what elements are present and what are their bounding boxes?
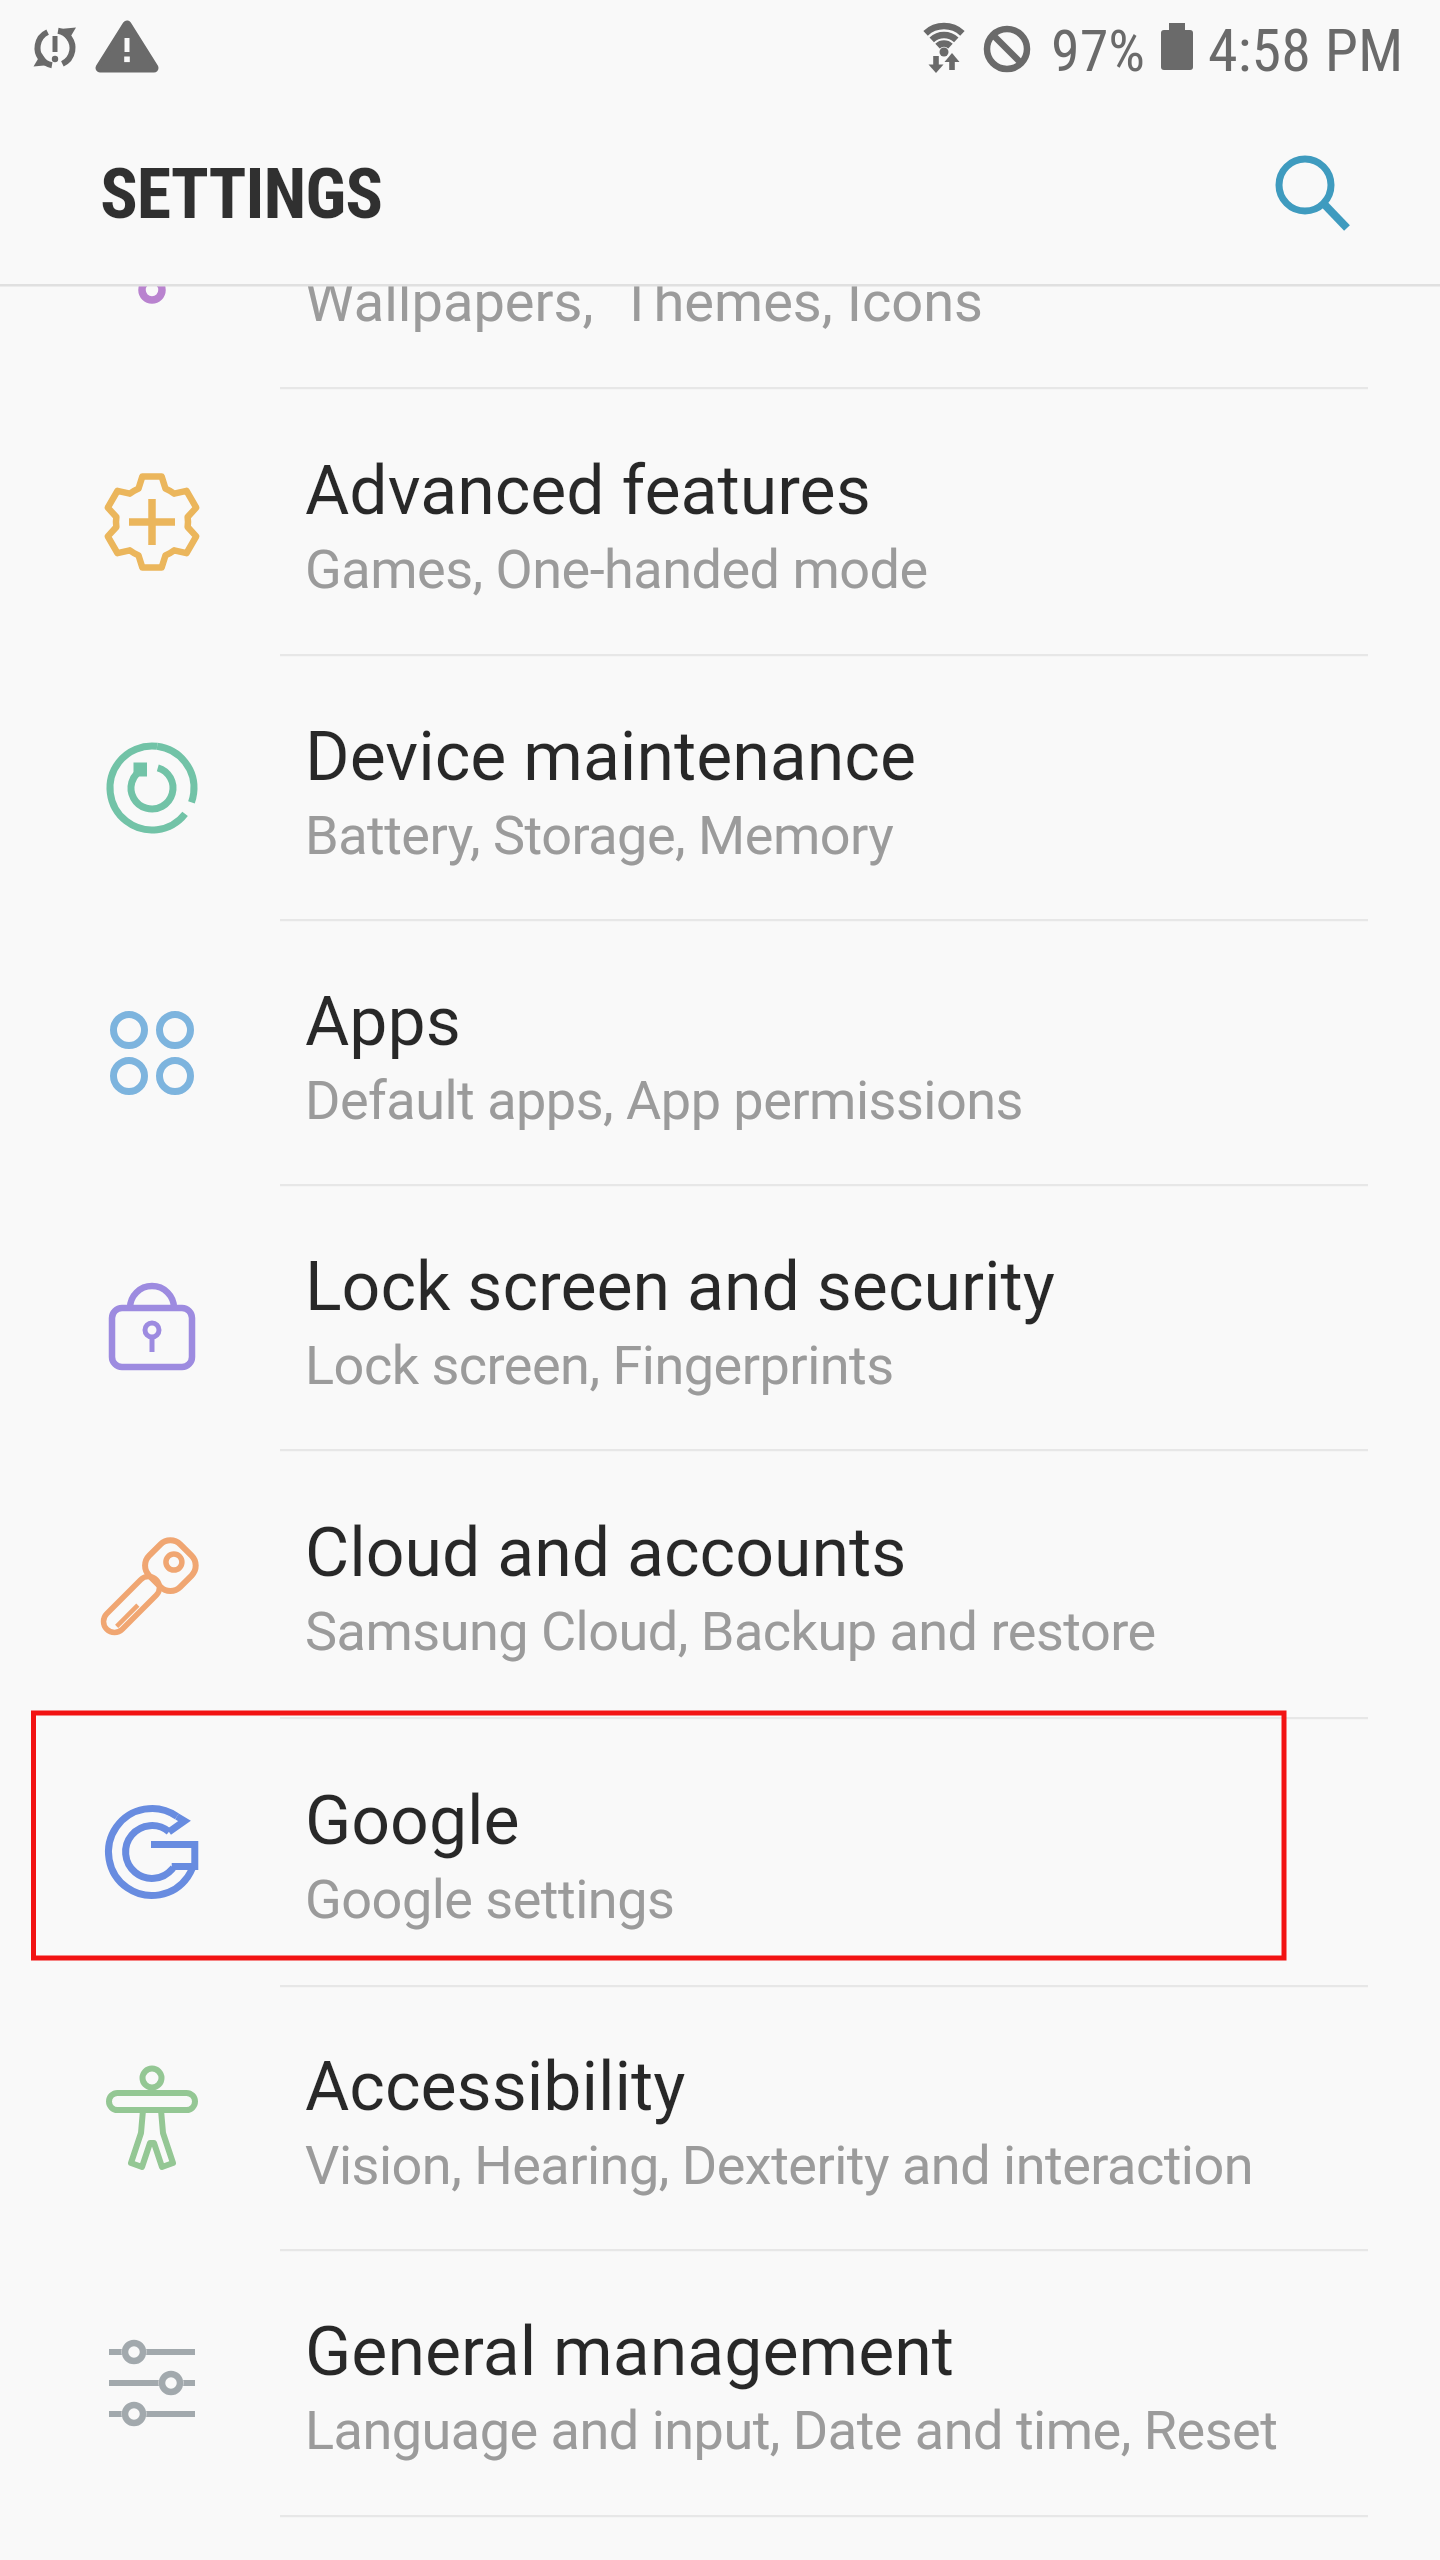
staticText: Google <box>305 1781 520 1861</box>
staticText: Apps <box>305 982 461 1062</box>
staticText: SETTINGS <box>100 153 383 235</box>
staticText: General management <box>305 2312 954 2392</box>
staticText: Lock screen, Fingerprints <box>305 1334 894 1397</box>
staticText: Accessibility <box>305 2047 686 2127</box>
button[interactable]: Cloud and accounts <box>0 1452 1440 1716</box>
button[interactable]: Apps <box>0 921 1440 1185</box>
button[interactable]: Google <box>0 1720 1440 1984</box>
staticText: 4:58 PM <box>1208 15 1404 85</box>
button[interactable]: Accessibility <box>0 1986 1440 2250</box>
button[interactable]: General management <box>0 2251 1440 2515</box>
staticText: Cloud and accounts <box>305 1513 907 1593</box>
staticText: Advanced features <box>305 451 871 531</box>
staticText: 97% <box>1051 17 1145 85</box>
button[interactable]: Lock screen and security <box>0 1186 1440 1450</box>
staticText: Samsung Cloud, Backup and restore <box>305 1600 1156 1663</box>
staticText: Vision, Hearing, Dexterity and interacti… <box>305 2134 1254 2197</box>
staticText: Lock screen and security <box>305 1247 1055 1327</box>
staticText: Games, One-handed mode <box>305 538 928 601</box>
staticText: Google settings <box>305 1868 675 1931</box>
staticText: Battery, Storage, Memory <box>305 804 894 867</box>
staticText: Wallpapers, Themes, Icons <box>305 269 983 335</box>
staticText: Device maintenance <box>305 717 917 797</box>
button[interactable]: Device maintenance <box>0 656 1440 920</box>
button[interactable] <box>1255 135 1365 245</box>
staticText: Default apps, App permissions <box>305 1069 1023 1132</box>
staticText: Language and input, Date and time, Reset <box>305 2399 1278 2462</box>
button[interactable]: Advanced features <box>0 390 1440 654</box>
